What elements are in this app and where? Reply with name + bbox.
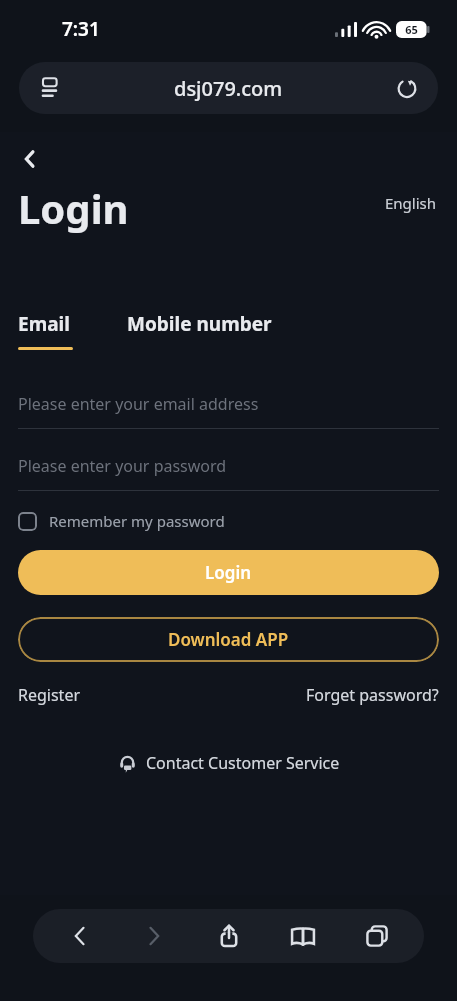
button[interactable]: Bookmarks — [276, 909, 330, 963]
button[interactable]: Forget password? — [306, 684, 439, 706]
button[interactable]: Back — [10, 139, 50, 179]
staticText: Register — [18, 684, 81, 706]
button[interactable]: Remember my password — [18, 511, 225, 531]
button[interactable]: Download APP — [18, 617, 439, 662]
staticText: Login — [18, 181, 129, 235]
button[interactable]: Email — [18, 311, 73, 350]
button[interactable]: Mobile number — [127, 311, 272, 337]
button[interactable]: Forward — [127, 909, 181, 963]
button[interactable]: Contact Customer Service — [0, 752, 457, 774]
staticText: Forget password? — [306, 684, 439, 706]
staticText: 65 — [396, 22, 427, 37]
button[interactable]: Share — [202, 909, 256, 963]
button[interactable]: Login — [18, 550, 439, 595]
button[interactable]: Register — [18, 684, 81, 706]
button[interactable]: Page settings — [19, 62, 438, 114]
button[interactable]: Tabs — [350, 909, 404, 963]
staticText: Contact Customer Service — [146, 752, 340, 774]
staticText: Email — [18, 311, 70, 337]
button[interactable]: English — [385, 193, 437, 213]
staticText: dsj079.com — [174, 75, 283, 102]
staticText: 7:31 — [62, 16, 100, 42]
staticText: Please enter your email address — [18, 393, 259, 415]
staticText: Please enter your password — [18, 455, 227, 477]
staticText: Mobile number — [127, 311, 272, 337]
staticText: Remember my password — [49, 511, 225, 531]
button[interactable]: Page settings — [35, 71, 69, 105]
staticText: English — [385, 193, 437, 213]
staticText: Login — [205, 561, 252, 584]
staticText: Download APP — [168, 628, 289, 651]
button[interactable]: Back — [53, 909, 107, 963]
button[interactable]: Reload — [390, 71, 424, 105]
